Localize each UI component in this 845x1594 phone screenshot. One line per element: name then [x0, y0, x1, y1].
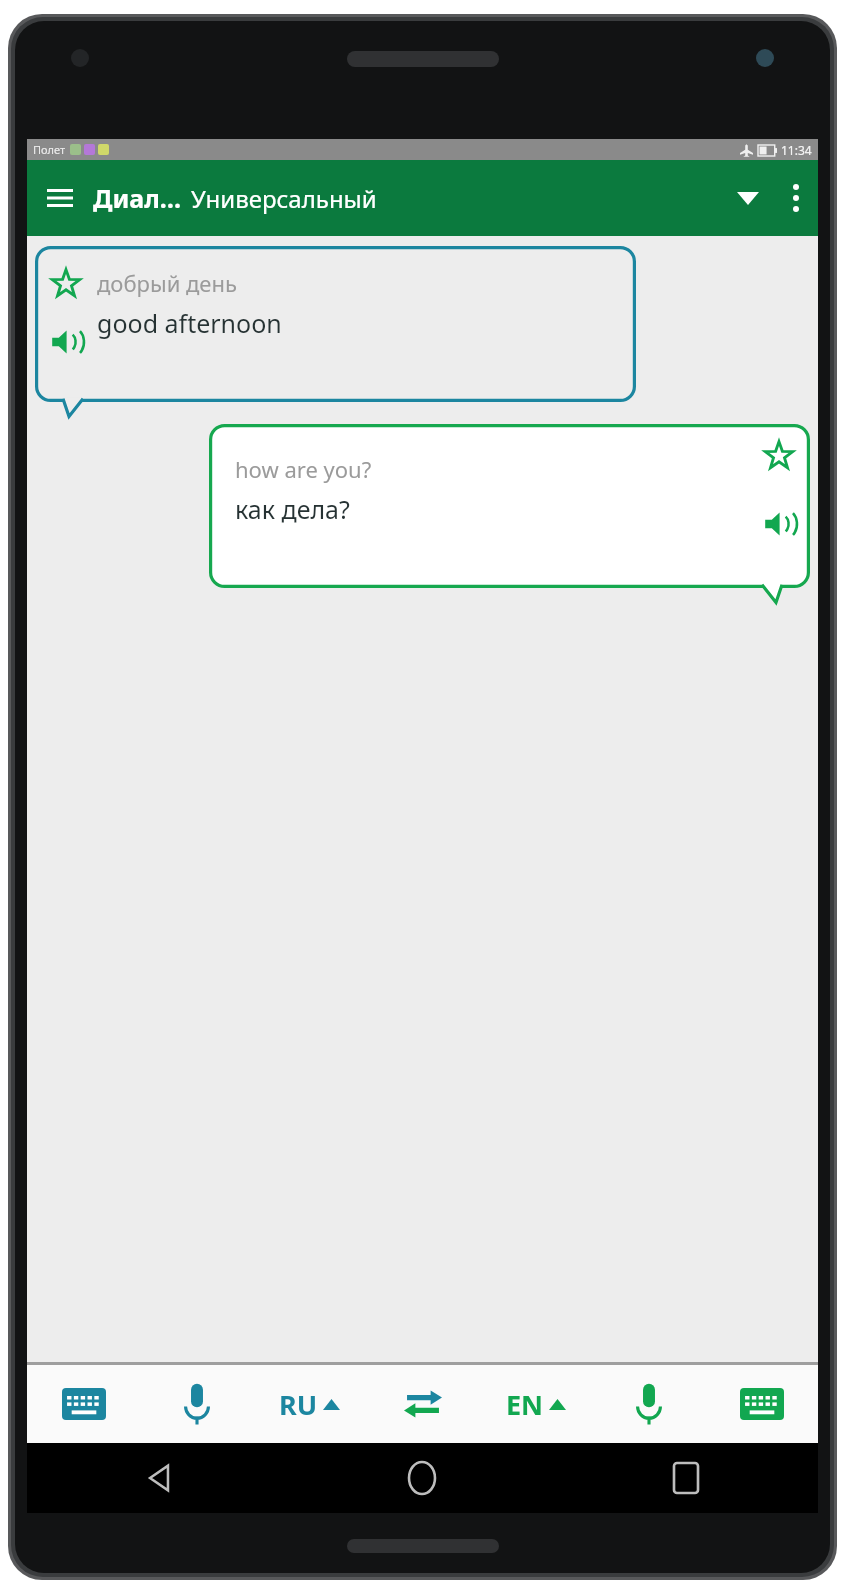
- button[interactable]: English voice input: [592, 1365, 705, 1443]
- button[interactable]: Add to favourites: [46, 264, 86, 304]
- button[interactable]: Russian keyboard: [27, 1365, 140, 1443]
- button[interactable]: Add to favourites: [759, 436, 799, 476]
- staticText: Полет: [33, 142, 66, 157]
- button[interactable]: Source language RU: [253, 1365, 366, 1443]
- button[interactable]: Expand language list: [722, 160, 774, 236]
- button[interactable]: Back: [27, 1443, 290, 1513]
- staticText: good afternoon: [97, 306, 282, 340]
- button[interactable]: Recent apps: [554, 1443, 818, 1513]
- button[interactable]: Home: [290, 1443, 554, 1513]
- staticText: Универсальный: [191, 182, 377, 215]
- staticText: RU: [279, 1386, 318, 1423]
- button[interactable]: More options: [774, 160, 818, 236]
- button[interactable]: Russian voice input: [140, 1365, 253, 1443]
- staticText: 11:34: [781, 142, 812, 158]
- button[interactable]: Swap languages: [366, 1365, 479, 1443]
- staticText: добрый день: [97, 268, 237, 298]
- button[interactable]: Play translation: [759, 504, 799, 544]
- staticText: EN: [506, 1386, 544, 1423]
- button[interactable]: Open navigation drawer: [27, 160, 93, 236]
- staticText: Диал…: [93, 181, 182, 215]
- staticText: how are you?: [235, 454, 372, 484]
- button[interactable]: how are you?: [209, 424, 810, 588]
- button[interactable]: English keyboard: [705, 1365, 818, 1443]
- button[interactable]: Target language EN: [479, 1365, 592, 1443]
- staticText: как дела?: [235, 492, 350, 526]
- button[interactable]: Add to favourites: [35, 246, 636, 402]
- button[interactable]: Play translation: [46, 322, 86, 362]
